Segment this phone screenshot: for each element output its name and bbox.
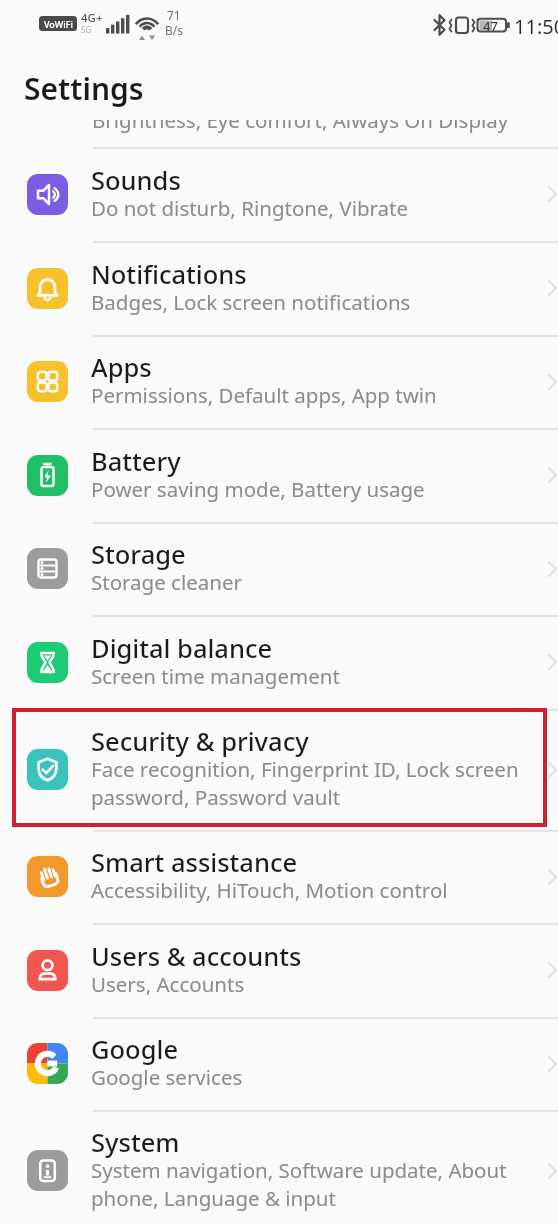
staticText: Digital balance [91, 631, 273, 666]
staticText: Apps [91, 350, 152, 385]
staticText: 4G+ [81, 10, 103, 26]
staticText: Security & privacy [91, 724, 309, 759]
button[interactable]: Battery [0, 428, 558, 522]
staticText: Users, Accounts [91, 970, 245, 998]
button[interactable]: Notifications [0, 241, 558, 335]
button[interactable]: Google [0, 1017, 558, 1110]
staticText: Sounds [91, 163, 181, 198]
staticText: System [91, 1125, 180, 1160]
staticText: Users & accounts [91, 939, 302, 974]
staticText: Accessibility, HiTouch, Motion control [91, 876, 448, 904]
staticText: Storage cleaner [91, 568, 243, 596]
staticText: 71 [167, 7, 181, 23]
button[interactable]: Sounds [0, 147, 558, 241]
staticText: Google [91, 1032, 179, 1067]
staticText: Brightness, Eye comfort, Always On Displ… [92, 120, 509, 133]
button[interactable]: Apps [0, 335, 558, 428]
staticText: System navigation, Software update, Abou… [91, 1156, 507, 1212]
button[interactable]: Security & privacy [0, 709, 558, 830]
button[interactable]: System [0, 1110, 558, 1224]
button[interactable]: Smart assistance [0, 830, 558, 923]
staticText: Do not disturb, Ringtone, Vibrate [91, 194, 409, 222]
staticText: 11:50 [514, 13, 558, 40]
staticText: Google services [91, 1063, 243, 1091]
staticText: VoWiFi [44, 18, 73, 30]
staticText: Screen time management [91, 662, 340, 690]
staticText: Battery [91, 444, 181, 479]
staticText: Settings [24, 68, 144, 109]
button[interactable]: Storage [0, 522, 558, 615]
staticText: Badges, Lock screen notifications [91, 288, 411, 316]
button[interactable]: Digital balance [0, 615, 558, 709]
staticText: Face recognition, Fingerprint ID, Lock s… [91, 755, 519, 811]
button[interactable]: Users & accounts [0, 923, 558, 1017]
staticText: 47 [483, 17, 498, 35]
staticText: Smart assistance [91, 845, 298, 880]
staticText: Power saving mode, Battery usage [91, 475, 425, 503]
staticText: B/s [165, 22, 184, 38]
staticText: Notifications [91, 257, 247, 292]
staticText: Permissions, Default apps, App twin [91, 381, 437, 409]
staticText: Storage [91, 537, 186, 572]
staticText: 5G [81, 24, 92, 35]
